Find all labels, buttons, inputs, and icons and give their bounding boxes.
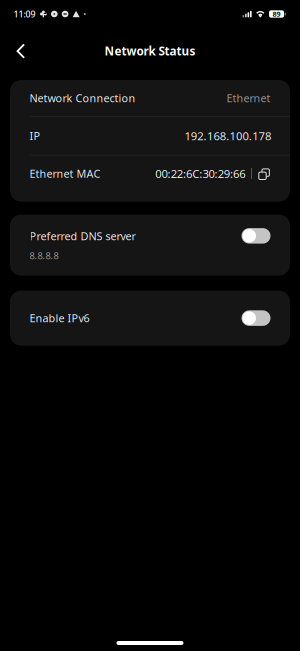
button[interactable]: Copy MAC address bbox=[256, 166, 269, 182]
staticText: 192.168.100.178 bbox=[184, 128, 271, 143]
staticText: 00:22:6C:30:29:66 bbox=[155, 166, 245, 181]
button[interactable]: Back bbox=[4, 32, 38, 66]
staticText: Ethernet MAC bbox=[29, 166, 100, 181]
staticText: Network Status bbox=[104, 43, 195, 59]
button[interactable]: Enable IPv6 bbox=[241, 310, 270, 326]
staticText: 89 bbox=[273, 9, 281, 19]
staticText: 11:09 bbox=[13, 8, 35, 20]
staticText: 8.8.8.8 bbox=[29, 249, 58, 262]
staticText: Network Connection bbox=[29, 91, 135, 105]
staticText: IP bbox=[29, 128, 40, 143]
button[interactable]: Preferred DNS server bbox=[241, 228, 270, 244]
staticText: Ethernet bbox=[226, 91, 270, 105]
staticText: Enable IPv6 bbox=[29, 311, 89, 325]
staticText: Preferred DNS server bbox=[29, 229, 135, 243]
